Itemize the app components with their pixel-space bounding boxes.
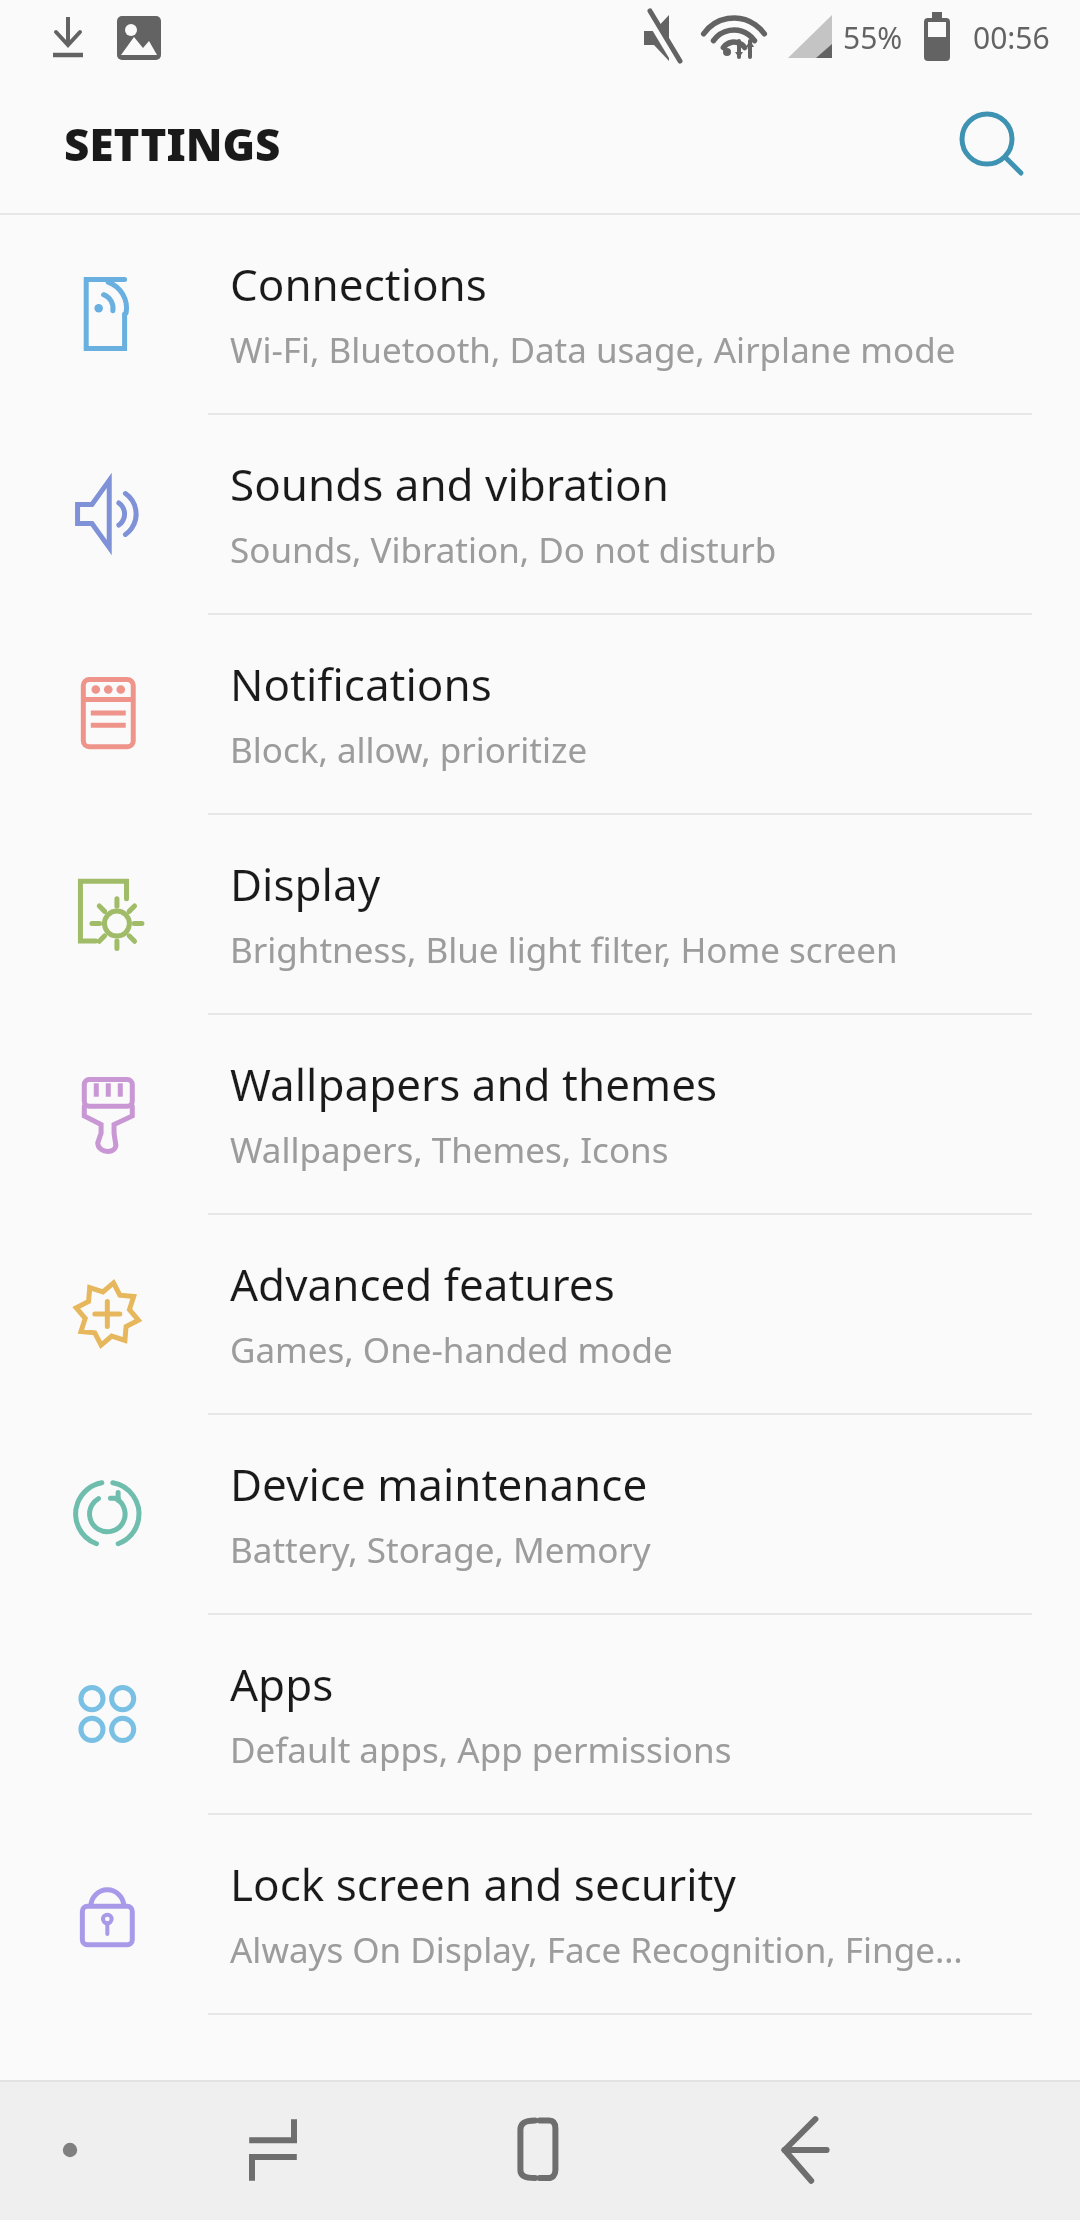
staticText: Connections bbox=[230, 254, 487, 314]
staticText: Always On Display, Face Recognition, Fin… bbox=[230, 1926, 963, 1974]
staticText: Advanced features bbox=[230, 1254, 615, 1314]
staticText: Display bbox=[230, 854, 381, 914]
staticText: Wi-Fi, Bluetooth, Data usage, Airplane m… bbox=[230, 326, 956, 374]
staticText: Sounds, Vibration, Do not disturb bbox=[230, 526, 777, 574]
button[interactable]: Notifications bbox=[0, 615, 1080, 815]
staticText: Brightness, Blue light filter, Home scre… bbox=[230, 926, 898, 974]
button[interactable]: Search bbox=[936, 89, 1046, 199]
button[interactable]: Sounds and vibration bbox=[0, 415, 1080, 615]
staticText: Lock screen and security bbox=[230, 1854, 736, 1914]
staticText: Apps bbox=[230, 1654, 334, 1714]
staticText: Battery, Storage, Memory bbox=[230, 1526, 651, 1574]
button[interactable]: Recents bbox=[140, 2080, 406, 2220]
button[interactable]: Device maintenance bbox=[0, 1415, 1080, 1615]
staticText: SETTINGS bbox=[64, 114, 281, 174]
staticText: Sounds and vibration bbox=[230, 454, 669, 514]
staticText: Wallpapers, Themes, Icons bbox=[230, 1126, 669, 1174]
staticText: Games, One-handed mode bbox=[230, 1326, 673, 1374]
button[interactable]: Lock screen and security bbox=[0, 1815, 1080, 2015]
staticText: Block, allow, prioritize bbox=[230, 726, 588, 774]
button[interactable]: Apps bbox=[0, 1615, 1080, 1815]
staticText: Notifications bbox=[230, 654, 492, 714]
staticText: 55% bbox=[843, 17, 903, 58]
staticText: 00:56 bbox=[973, 17, 1050, 58]
staticText: Wallpapers and themes bbox=[230, 1054, 718, 1114]
button[interactable]: Wallpapers and themes bbox=[0, 1015, 1080, 1215]
button[interactable]: Home bbox=[406, 2080, 673, 2220]
button[interactable]: Display bbox=[0, 815, 1080, 1015]
button[interactable]: Advanced features bbox=[0, 1215, 1080, 1415]
staticText: Default apps, App permissions bbox=[230, 1726, 732, 1774]
button[interactable]: Back bbox=[673, 2080, 940, 2220]
button[interactable]: Connections bbox=[0, 215, 1080, 415]
staticText: Device maintenance bbox=[230, 1454, 648, 1514]
